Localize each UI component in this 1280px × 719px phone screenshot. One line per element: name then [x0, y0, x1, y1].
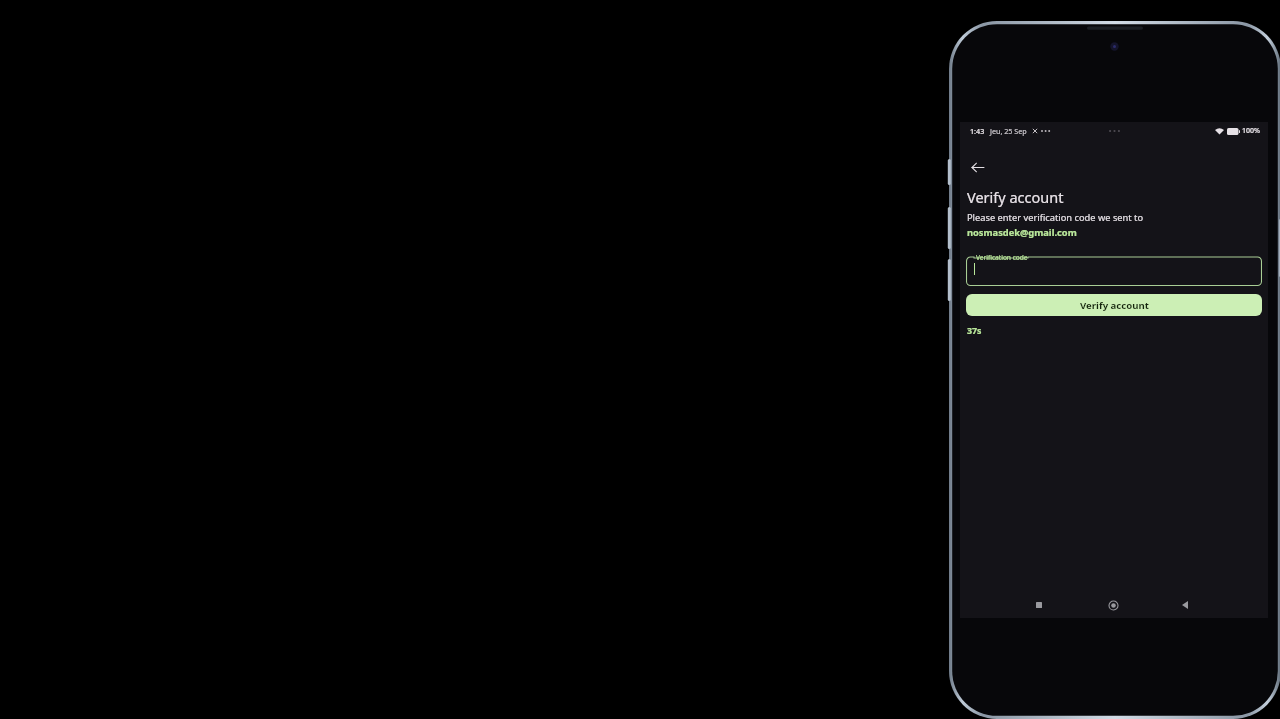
button[interactable]: Recent apps — [1028, 594, 1050, 616]
staticText: 100% — [1242, 126, 1260, 136]
button[interactable]: Home — [1102, 594, 1124, 616]
staticText: Verification code — [976, 253, 1028, 262]
staticText: 37s — [967, 325, 982, 337]
staticText: 1:43 — [970, 126, 985, 136]
button[interactable]: Verification code — [966, 252, 1262, 286]
staticText: nosmasdek@gmail.com — [967, 226, 1077, 239]
staticText: Verify account — [1080, 299, 1149, 312]
staticText: Jeu, 25 Sep — [990, 126, 1027, 136]
button[interactable]: Verify account — [966, 294, 1262, 316]
button[interactable]: Back — [1174, 594, 1196, 616]
button[interactable]: Back — [963, 153, 991, 181]
staticText: Please enter verification code we sent t… — [967, 211, 1144, 224]
staticText: Verify account — [967, 187, 1064, 207]
